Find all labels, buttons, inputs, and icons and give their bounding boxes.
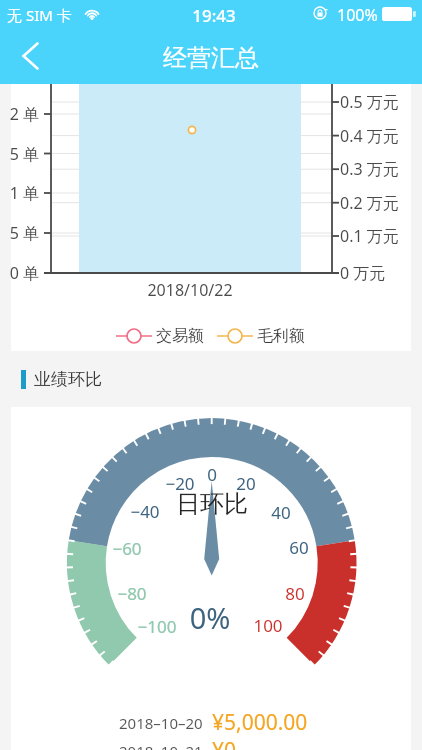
staticText: 0% [150,598,270,637]
staticText: 60 [269,536,329,559]
staticText: 0.1 万元 [340,225,399,247]
staticText: −100 [127,615,187,638]
staticText: 100 [238,614,298,637]
button[interactable]: 毛利额 [217,326,305,346]
staticText: 20 [216,472,276,495]
staticText: 毛利额 [257,326,305,346]
staticText: 2 单 [0,103,39,125]
button[interactable]: 交易额 [116,326,204,346]
button[interactable]: Back [4,30,56,84]
staticText: 无 SIM 卡 [7,5,72,25]
staticText: 2018/10/22 [130,279,250,301]
staticText: 交易额 [156,326,204,346]
staticText: ¥0 [212,736,237,750]
staticText: −60 [97,537,157,560]
button[interactable]: 业绩环比 [21,351,422,407]
staticText: −80 [102,582,162,605]
staticText: 80 [265,582,325,605]
staticText: 0.2 万元 [340,192,399,214]
staticText: 2018–10–20 [119,713,203,733]
staticText: 0 [182,463,242,486]
staticText: ¥5,000.00 [212,708,308,737]
staticText: 0.3 万元 [340,158,399,180]
staticText: 1 单 [0,182,39,204]
staticText: 2018–10–21 [119,741,203,750]
staticText: 19:43 [182,4,246,27]
staticText: 100% [337,4,378,26]
staticText: 0 万元 [340,262,386,284]
staticText: 5 单 [0,222,39,244]
staticText: −20 [150,472,210,495]
staticText: 0 单 [0,262,39,284]
staticText: 经营汇总 [163,43,259,73]
staticText: 0.4 万元 [340,125,399,147]
staticText: 日环比 [152,489,272,519]
staticText: 0.5 万元 [340,91,399,113]
staticText: 40 [251,501,311,524]
staticText: 5 单 [0,143,39,165]
staticText: −40 [115,500,175,523]
staticText: 业绩环比 [34,369,102,390]
